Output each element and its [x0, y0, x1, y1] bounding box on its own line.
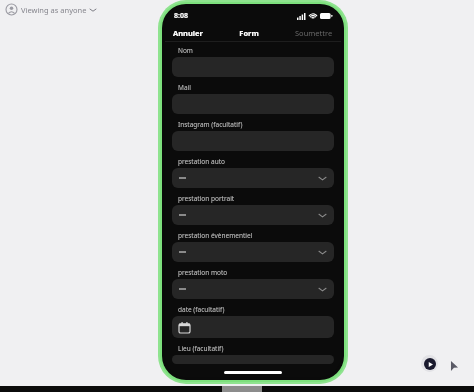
staticText: Soumettre — [295, 28, 333, 38]
staticText: Mail — [178, 83, 191, 92]
button[interactable]: Soumettre — [293, 27, 335, 39]
staticText: date (facultatif) — [178, 305, 225, 314]
staticText: Lieu (facultatif) — [178, 344, 224, 353]
staticText: prestation moto — [178, 268, 228, 277]
staticText: Viewing as anyone — [21, 5, 87, 15]
staticText: Instagram (facultatif) — [178, 120, 243, 129]
staticText: prestation évènementiel — [178, 231, 253, 240]
button[interactable]: Choisir une date — [172, 316, 334, 338]
button[interactable]: Play — [421, 355, 438, 372]
button[interactable]: Viewing as anyone — [6, 4, 96, 15]
staticText: Form — [239, 28, 259, 38]
staticText: 8:08 — [174, 11, 188, 21]
button[interactable]: Annuler — [171, 27, 205, 39]
button[interactable] — [172, 168, 334, 188]
staticText: prestation auto — [178, 157, 225, 166]
button[interactable] — [172, 242, 334, 262]
staticText: Nom — [178, 46, 193, 55]
button[interactable] — [172, 205, 334, 225]
staticText: Annuler — [173, 28, 203, 38]
button[interactable] — [172, 279, 334, 299]
staticText: prestation portrait — [178, 194, 235, 203]
